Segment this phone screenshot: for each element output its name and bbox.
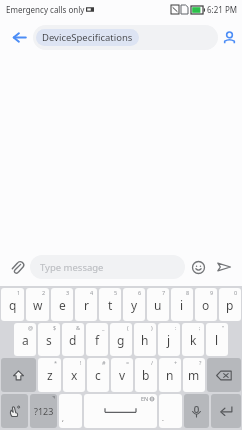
button[interactable]: 4 <box>75 288 97 321</box>
staticText: : <box>175 324 177 331</box>
button[interactable]: Type message <box>30 255 185 279</box>
staticText: + <box>174 359 178 366</box>
staticText: # <box>102 359 106 366</box>
button[interactable]: @ <box>14 323 36 356</box>
button[interactable]: Attach <box>4 254 30 280</box>
button[interactable]: : <box>158 323 180 356</box>
staticText: , <box>62 414 64 424</box>
button[interactable]: 9 <box>195 288 217 321</box>
staticText: ( <box>127 324 129 331</box>
staticText: b <box>142 367 150 383</box>
staticText: $ <box>53 324 57 331</box>
staticText: u <box>154 297 162 313</box>
staticText: ! <box>80 359 82 366</box>
staticText: 1 <box>17 289 21 296</box>
button[interactable]: 3 <box>51 288 73 321</box>
staticText: j <box>167 332 171 348</box>
staticText: r <box>84 297 89 313</box>
staticText: p <box>226 297 234 313</box>
button[interactable]: ( <box>110 323 132 356</box>
staticText: 6 <box>138 289 142 296</box>
staticText: 8 <box>186 289 190 296</box>
staticText: s <box>46 332 52 348</box>
staticText: 2 <box>42 289 46 296</box>
button[interactable]: * <box>38 358 61 392</box>
staticText: 3 <box>66 289 70 296</box>
staticText: c <box>95 367 101 383</box>
button[interactable]: 1 <box>1 288 24 321</box>
button[interactable]: Shift <box>1 358 36 392</box>
button[interactable]: ? <box>183 358 205 392</box>
button[interactable]: Backspace <box>207 358 241 392</box>
staticText: " <box>222 324 225 331</box>
button[interactable]: = <box>111 358 133 392</box>
button[interactable]: Contact <box>218 26 240 48</box>
staticText: @ <box>28 324 33 331</box>
button[interactable]: . <box>159 394 182 428</box>
staticText: _ <box>102 324 105 331</box>
staticText: 6:21 PM <box>207 4 238 15</box>
button[interactable]: Emoji keyboard <box>1 394 28 428</box>
staticText: EN <box>141 395 149 402</box>
staticText: z <box>47 367 53 383</box>
staticText: ) <box>151 324 153 331</box>
button[interactable]: 2 <box>26 288 49 321</box>
staticText: 0 <box>234 289 238 296</box>
staticText: . <box>162 414 164 424</box>
staticText: q <box>9 297 17 313</box>
staticText: d <box>69 332 77 348</box>
staticText: DeviceSpecifications <box>42 31 133 44</box>
button[interactable]: 7 <box>147 288 169 321</box>
button[interactable]: Voice input <box>184 394 209 428</box>
staticText: n <box>166 367 174 383</box>
staticText: ; <box>199 324 201 331</box>
button[interactable]: DeviceSpecifications <box>33 25 218 50</box>
button[interactable]: Enter <box>211 394 241 428</box>
button[interactable]: Emoji <box>185 254 211 280</box>
button[interactable]: ) <box>134 323 156 356</box>
button[interactable]: Space <box>84 394 157 428</box>
staticText: f <box>95 332 100 348</box>
button[interactable]: " <box>206 323 228 356</box>
button[interactable]: / <box>135 358 157 392</box>
staticText: Emergency calls only <box>6 4 85 15</box>
staticText: = <box>126 359 130 366</box>
staticText: 5 <box>114 289 118 296</box>
staticText: 9 <box>210 289 214 296</box>
staticText: k <box>190 332 197 348</box>
button[interactable]: & <box>62 323 84 356</box>
button[interactable]: + <box>159 358 181 392</box>
button[interactable]: $ <box>38 323 60 356</box>
staticText: 7 <box>162 289 166 296</box>
staticText: ? <box>199 359 202 366</box>
staticText: h <box>141 332 149 348</box>
button[interactable]: Back <box>6 24 32 50</box>
staticText: w <box>33 297 43 313</box>
button[interactable]: 5 <box>99 288 121 321</box>
staticText: m <box>188 367 200 383</box>
staticText: y <box>131 297 138 313</box>
staticText: Type message <box>40 261 104 274</box>
staticText: l <box>215 332 219 348</box>
button[interactable]: ; <box>182 323 204 356</box>
button[interactable]: 0 <box>219 288 241 321</box>
staticText: v <box>119 367 126 383</box>
staticText: & <box>76 324 81 331</box>
staticText: e <box>59 297 66 313</box>
staticText: o <box>202 297 210 313</box>
staticText: i <box>180 297 184 313</box>
button[interactable]: 8 <box>171 288 193 321</box>
button[interactable]: # <box>87 358 109 392</box>
staticText: g <box>117 332 125 348</box>
staticText: 4 <box>90 289 94 296</box>
button[interactable]: , <box>59 394 82 428</box>
button[interactable]: _ <box>86 323 108 356</box>
staticText: x <box>71 367 78 383</box>
button[interactable]: ?123 <box>30 394 57 428</box>
button[interactable]: ! <box>63 358 85 392</box>
button[interactable]: Send <box>211 254 237 280</box>
button[interactable]: 6 <box>123 288 145 321</box>
staticText: ?123 <box>34 405 54 417</box>
staticText: a <box>22 332 29 348</box>
staticText: / <box>151 359 154 366</box>
